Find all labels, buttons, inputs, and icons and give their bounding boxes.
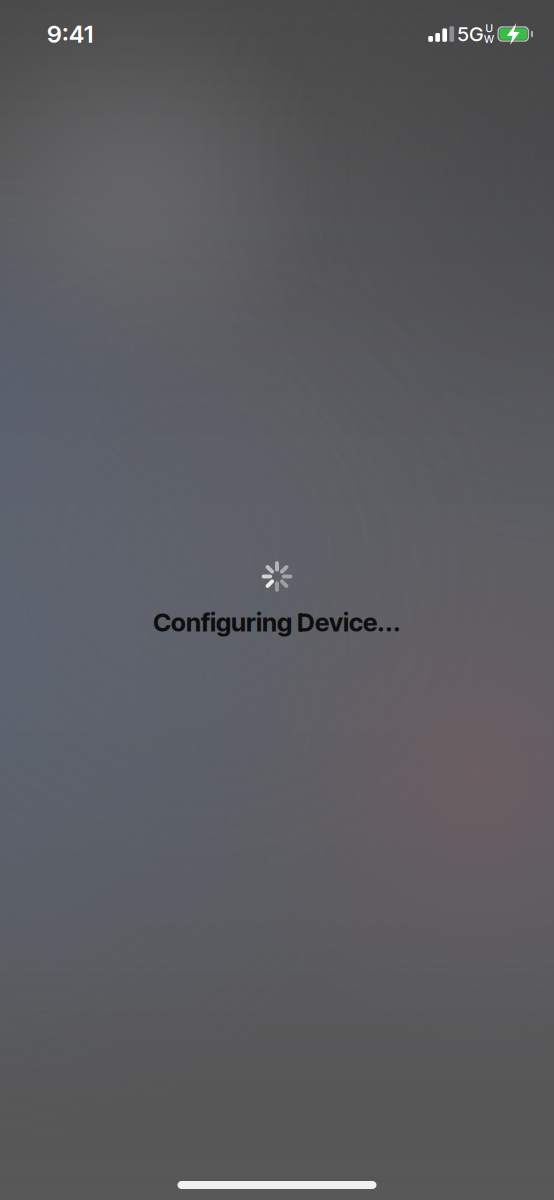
button[interactable]: Home: [177, 1181, 376, 1189]
staticText: 5G: [457, 22, 483, 46]
staticText: Configuring Device...: [153, 607, 401, 638]
staticText: U: [485, 22, 492, 35]
staticText: 9:41: [47, 19, 93, 48]
staticText: W: [484, 33, 494, 46]
